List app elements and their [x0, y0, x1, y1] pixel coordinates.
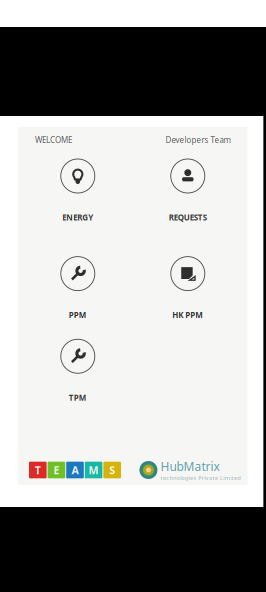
staticText: ENERGY: [62, 212, 93, 223]
staticText: M: [89, 463, 99, 477]
button[interactable]: REQUESTS: [133, 159, 243, 223]
staticText: REQUESTS: [169, 212, 207, 223]
staticText: PPM: [69, 310, 87, 320]
staticText: TPM: [69, 392, 87, 403]
button[interactable]: PPM: [23, 257, 133, 320]
staticText: HK PPM: [172, 310, 203, 320]
staticText: Developers Team: [166, 135, 231, 145]
staticText: E: [53, 463, 59, 477]
staticText: WELCOME: [35, 135, 72, 145]
button[interactable]: HK PPM: [133, 257, 243, 320]
staticText: technologies Private Limited: [160, 474, 241, 481]
staticText: S: [109, 463, 115, 477]
staticText: A: [71, 463, 78, 477]
staticText: T: [35, 463, 41, 477]
button[interactable]: TPM: [23, 339, 133, 403]
staticText: HubMatrix: [160, 458, 219, 474]
button[interactable]: ENERGY: [23, 159, 133, 223]
